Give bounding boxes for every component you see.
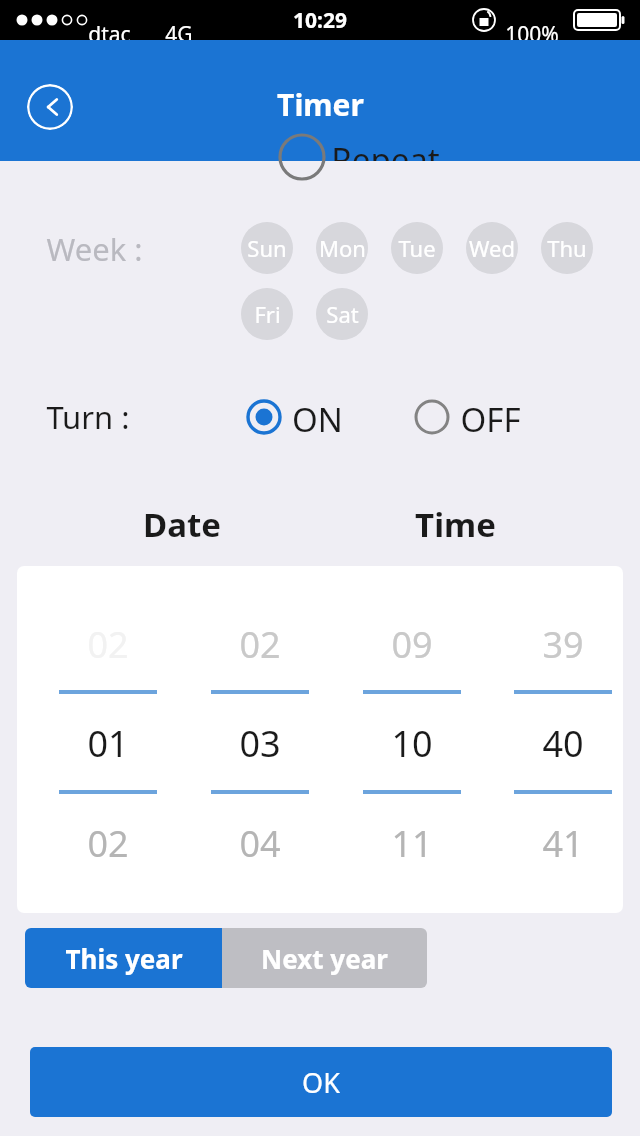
- button[interactable]: This year: [25, 928, 222, 988]
- staticText: Next year: [261, 941, 388, 976]
- staticText: Mon: [319, 233, 366, 263]
- staticText: 100%: [505, 20, 559, 49]
- staticText: 10: [391, 719, 433, 768]
- staticText: 04: [239, 819, 281, 868]
- staticText: 40: [542, 719, 584, 768]
- button[interactable]: Wed: [466, 222, 518, 274]
- staticText: Turn :: [46, 396, 130, 438]
- button[interactable]: 04: [200, 817, 320, 869]
- staticText: Thu: [547, 233, 587, 263]
- button[interactable]: ON: [246, 397, 343, 437]
- button[interactable]: Mon: [316, 222, 368, 274]
- button[interactable]: 10: [352, 717, 472, 769]
- staticText: 10:29: [293, 6, 347, 35]
- staticText: 09: [391, 620, 433, 669]
- staticText: 4G: [165, 20, 193, 49]
- staticText: Sun: [247, 233, 287, 263]
- button[interactable]: Back: [27, 84, 73, 130]
- staticText: OFF: [460, 397, 521, 437]
- staticText: 41: [542, 819, 584, 868]
- staticText: Wed: [469, 233, 515, 263]
- button[interactable]: 11: [352, 817, 472, 869]
- button[interactable]: Sat: [316, 288, 368, 340]
- staticText: Fri: [254, 299, 281, 329]
- button[interactable]: 41: [503, 817, 623, 869]
- staticText: dtac: [88, 20, 131, 49]
- staticText: 39: [542, 620, 584, 669]
- button[interactable]: Next year: [222, 928, 427, 988]
- button[interactable]: 01: [48, 717, 168, 769]
- staticText: Timer: [277, 84, 364, 125]
- button[interactable]: 02: [200, 618, 320, 670]
- staticText: Date: [143, 502, 221, 547]
- staticText: OK: [302, 1064, 340, 1101]
- button[interactable]: OFF: [414, 397, 521, 437]
- button[interactable]: OK: [30, 1047, 612, 1117]
- button[interactable]: Tue: [391, 222, 443, 274]
- staticText: 01: [87, 719, 129, 768]
- staticText: This year: [65, 941, 183, 976]
- button[interactable]: 40: [503, 717, 623, 769]
- staticText: ON: [292, 397, 343, 437]
- button[interactable]: Sun: [241, 222, 293, 274]
- staticText: 02: [87, 620, 129, 669]
- button[interactable]: 03: [200, 717, 320, 769]
- staticText: Tue: [398, 233, 436, 263]
- staticText: Week :: [46, 228, 143, 270]
- button[interactable]: Fri: [241, 288, 293, 340]
- button[interactable]: 39: [503, 618, 623, 670]
- staticText: Sat: [326, 299, 359, 329]
- button[interactable]: 02: [48, 817, 168, 869]
- button[interactable]: 09: [352, 618, 472, 670]
- button[interactable]: Thu: [541, 222, 593, 274]
- staticText: 03: [239, 719, 281, 768]
- staticText: Time: [415, 502, 496, 547]
- staticText: Repeat: [331, 137, 440, 161]
- staticText: 11: [391, 819, 433, 868]
- staticText: 02: [239, 620, 281, 669]
- staticText: 02: [87, 819, 129, 868]
